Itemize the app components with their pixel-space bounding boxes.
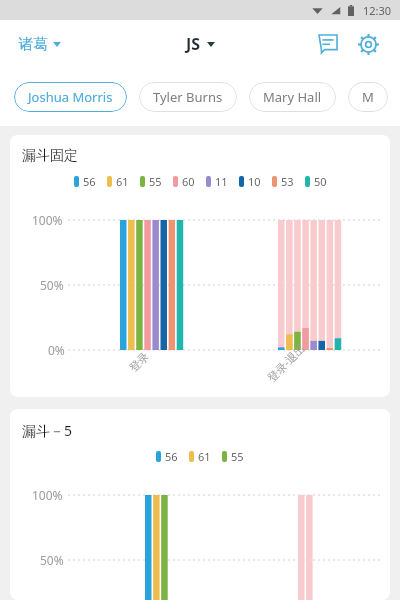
staticText: 56 <box>83 174 96 189</box>
staticText: 登录-退出 <box>264 340 308 385</box>
button[interactable]: 诸葛 <box>14 31 65 58</box>
staticText: Joshua Morris <box>28 88 113 106</box>
staticText: 0% <box>48 342 65 358</box>
staticText: 100% <box>32 212 63 228</box>
staticText: 诸葛 <box>18 35 48 54</box>
staticText: 55 <box>231 449 244 464</box>
button[interactable]: M <box>348 82 388 112</box>
button[interactable]: JS <box>182 29 219 59</box>
staticText: 10 <box>248 174 261 189</box>
button[interactable]: Messages <box>308 24 348 64</box>
staticText: 55 <box>149 174 162 189</box>
staticText: 61 <box>116 174 129 189</box>
staticText: 12:30 <box>363 3 392 18</box>
staticText: 100% <box>32 487 63 503</box>
staticText: Tyler Burns <box>153 88 223 106</box>
staticText: 50 <box>314 174 327 189</box>
staticText: 漏斗－5 <box>22 421 73 440</box>
staticText: 50% <box>40 552 64 568</box>
staticText: M <box>362 88 374 106</box>
button[interactable]: Mary Hall <box>249 82 336 112</box>
staticText: 登录 <box>126 349 152 375</box>
button[interactable]: 漏斗固定 <box>10 135 390 397</box>
staticText: Mary Hall <box>263 88 322 106</box>
staticText: 56 <box>165 449 178 464</box>
button[interactable]: 漏斗－5 <box>10 409 390 600</box>
button[interactable]: Joshua Morris <box>14 82 127 112</box>
staticText: 61 <box>198 449 211 464</box>
staticText: 11 <box>215 174 228 189</box>
staticText: 60 <box>182 174 195 189</box>
staticText: JS <box>186 33 201 55</box>
staticText: 漏斗固定 <box>22 147 78 165</box>
staticText: 53 <box>281 174 294 189</box>
button[interactable]: Settings <box>348 24 388 64</box>
button[interactable]: Tyler Burns <box>139 82 237 112</box>
staticText: 50% <box>40 277 64 293</box>
